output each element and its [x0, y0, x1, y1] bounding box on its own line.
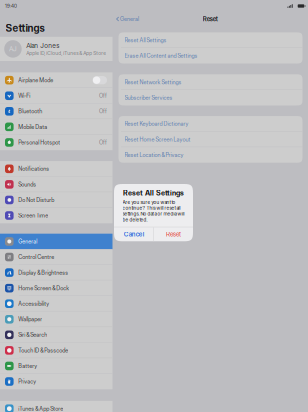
- button[interactable]: Erase All Content and Settings: [118, 48, 302, 64]
- button[interactable]: Reset Keyboard Dictionary: [118, 116, 302, 132]
- button[interactable]: Siri & Search: [0, 327, 112, 343]
- staticText: Airplane Mode: [18, 77, 53, 84]
- staticText: Screen Time: [18, 212, 48, 219]
- staticText: Control Centre: [18, 254, 54, 260]
- staticText: Are you sure you want to continue? This …: [122, 199, 184, 222]
- button[interactable]: Wi-Fi: [0, 88, 112, 104]
- button[interactable]: Wallpaper: [0, 311, 112, 327]
- staticText: Mobile Data: [18, 123, 47, 130]
- staticText: Accessibility: [18, 300, 49, 307]
- staticText: Off: [99, 139, 107, 146]
- button[interactable]: Subscriber Services: [118, 90, 302, 105]
- staticText: Bluetooth: [18, 108, 42, 115]
- staticText: Cancel: [124, 230, 144, 238]
- staticText: Alan Jones: [26, 41, 59, 50]
- button[interactable]: Cancel: [114, 227, 153, 241]
- staticText: Home Screen & Dock: [18, 285, 69, 292]
- staticText: Subscriber Services: [124, 94, 172, 101]
- staticText: Reset Location & Privacy: [124, 152, 183, 158]
- button[interactable]: Control Centre: [0, 249, 112, 265]
- button[interactable]: Display & Brightness: [0, 265, 112, 280]
- staticText: Settings: [5, 22, 44, 34]
- staticText: General: [120, 16, 139, 22]
- button[interactable]: Privacy: [0, 374, 112, 389]
- staticText: Sounds: [18, 181, 36, 188]
- staticText: Off: [99, 92, 107, 99]
- staticText: Wi-Fi: [18, 92, 30, 99]
- staticText: Apple ID, iCloud, iTunes & App Store: [26, 50, 106, 56]
- staticText: Reset Home Screen Layout: [124, 136, 190, 143]
- staticText: Erase All Content and Settings: [124, 52, 197, 59]
- staticText: Do Not Disturb: [18, 197, 54, 203]
- staticText: Reset All Settings: [124, 37, 166, 44]
- staticText: Battery: [18, 363, 37, 369]
- staticText: Siri & Search: [18, 331, 47, 338]
- staticText: Touch ID & Passcode: [18, 347, 68, 354]
- button[interactable]: Battery: [0, 358, 112, 374]
- staticText: Reset Keyboard Dictionary: [124, 120, 188, 127]
- button[interactable]: Touch ID & Passcode: [0, 343, 112, 358]
- staticText: Reset Network Settings: [124, 79, 181, 85]
- staticText: iTunes & App Store: [18, 405, 63, 412]
- staticText: Reset All Settings: [123, 189, 184, 197]
- button[interactable]: Reset Network Settings: [118, 74, 302, 90]
- staticText: Reset: [203, 15, 218, 23]
- staticText: Wallpaper: [18, 316, 42, 323]
- staticText: Privacy: [18, 378, 36, 385]
- button[interactable]: Accessibility: [0, 296, 112, 311]
- staticText: General: [18, 238, 37, 245]
- button[interactable]: Mobile Data: [0, 119, 112, 135]
- button[interactable]: Reset: [154, 227, 193, 241]
- button[interactable]: General: [112, 12, 143, 26]
- button[interactable]: Sounds: [0, 177, 112, 192]
- staticText: Reset: [166, 230, 181, 238]
- button[interactable]: Reset Location & Privacy: [118, 147, 302, 163]
- button[interactable]: General: [0, 234, 112, 249]
- button[interactable]: Bluetooth: [0, 103, 112, 119]
- button[interactable]: Personal Hotspot: [0, 135, 112, 150]
- staticText: Notifications: [18, 165, 49, 172]
- button[interactable]: AJ: [0, 37, 112, 61]
- staticText: Off: [99, 108, 107, 115]
- button[interactable]: Reset All Settings: [118, 32, 302, 48]
- staticText: Display & Brightness: [18, 269, 68, 276]
- button[interactable]: Airplane Mode: [0, 72, 112, 88]
- staticText: Personal Hotspot: [18, 139, 60, 146]
- button[interactable]: Screen Time: [0, 208, 112, 223]
- button[interactable]: iTunes & App Store: [0, 401, 112, 412]
- staticText: AJ: [9, 45, 17, 53]
- button[interactable]: Home Screen & Dock: [0, 280, 112, 296]
- button[interactable]: Do Not Disturb: [0, 192, 112, 208]
- button[interactable]: Reset Home Screen Layout: [118, 132, 302, 147]
- staticText: 19:40: [5, 3, 17, 9]
- button[interactable]: Notifications: [0, 161, 112, 177]
